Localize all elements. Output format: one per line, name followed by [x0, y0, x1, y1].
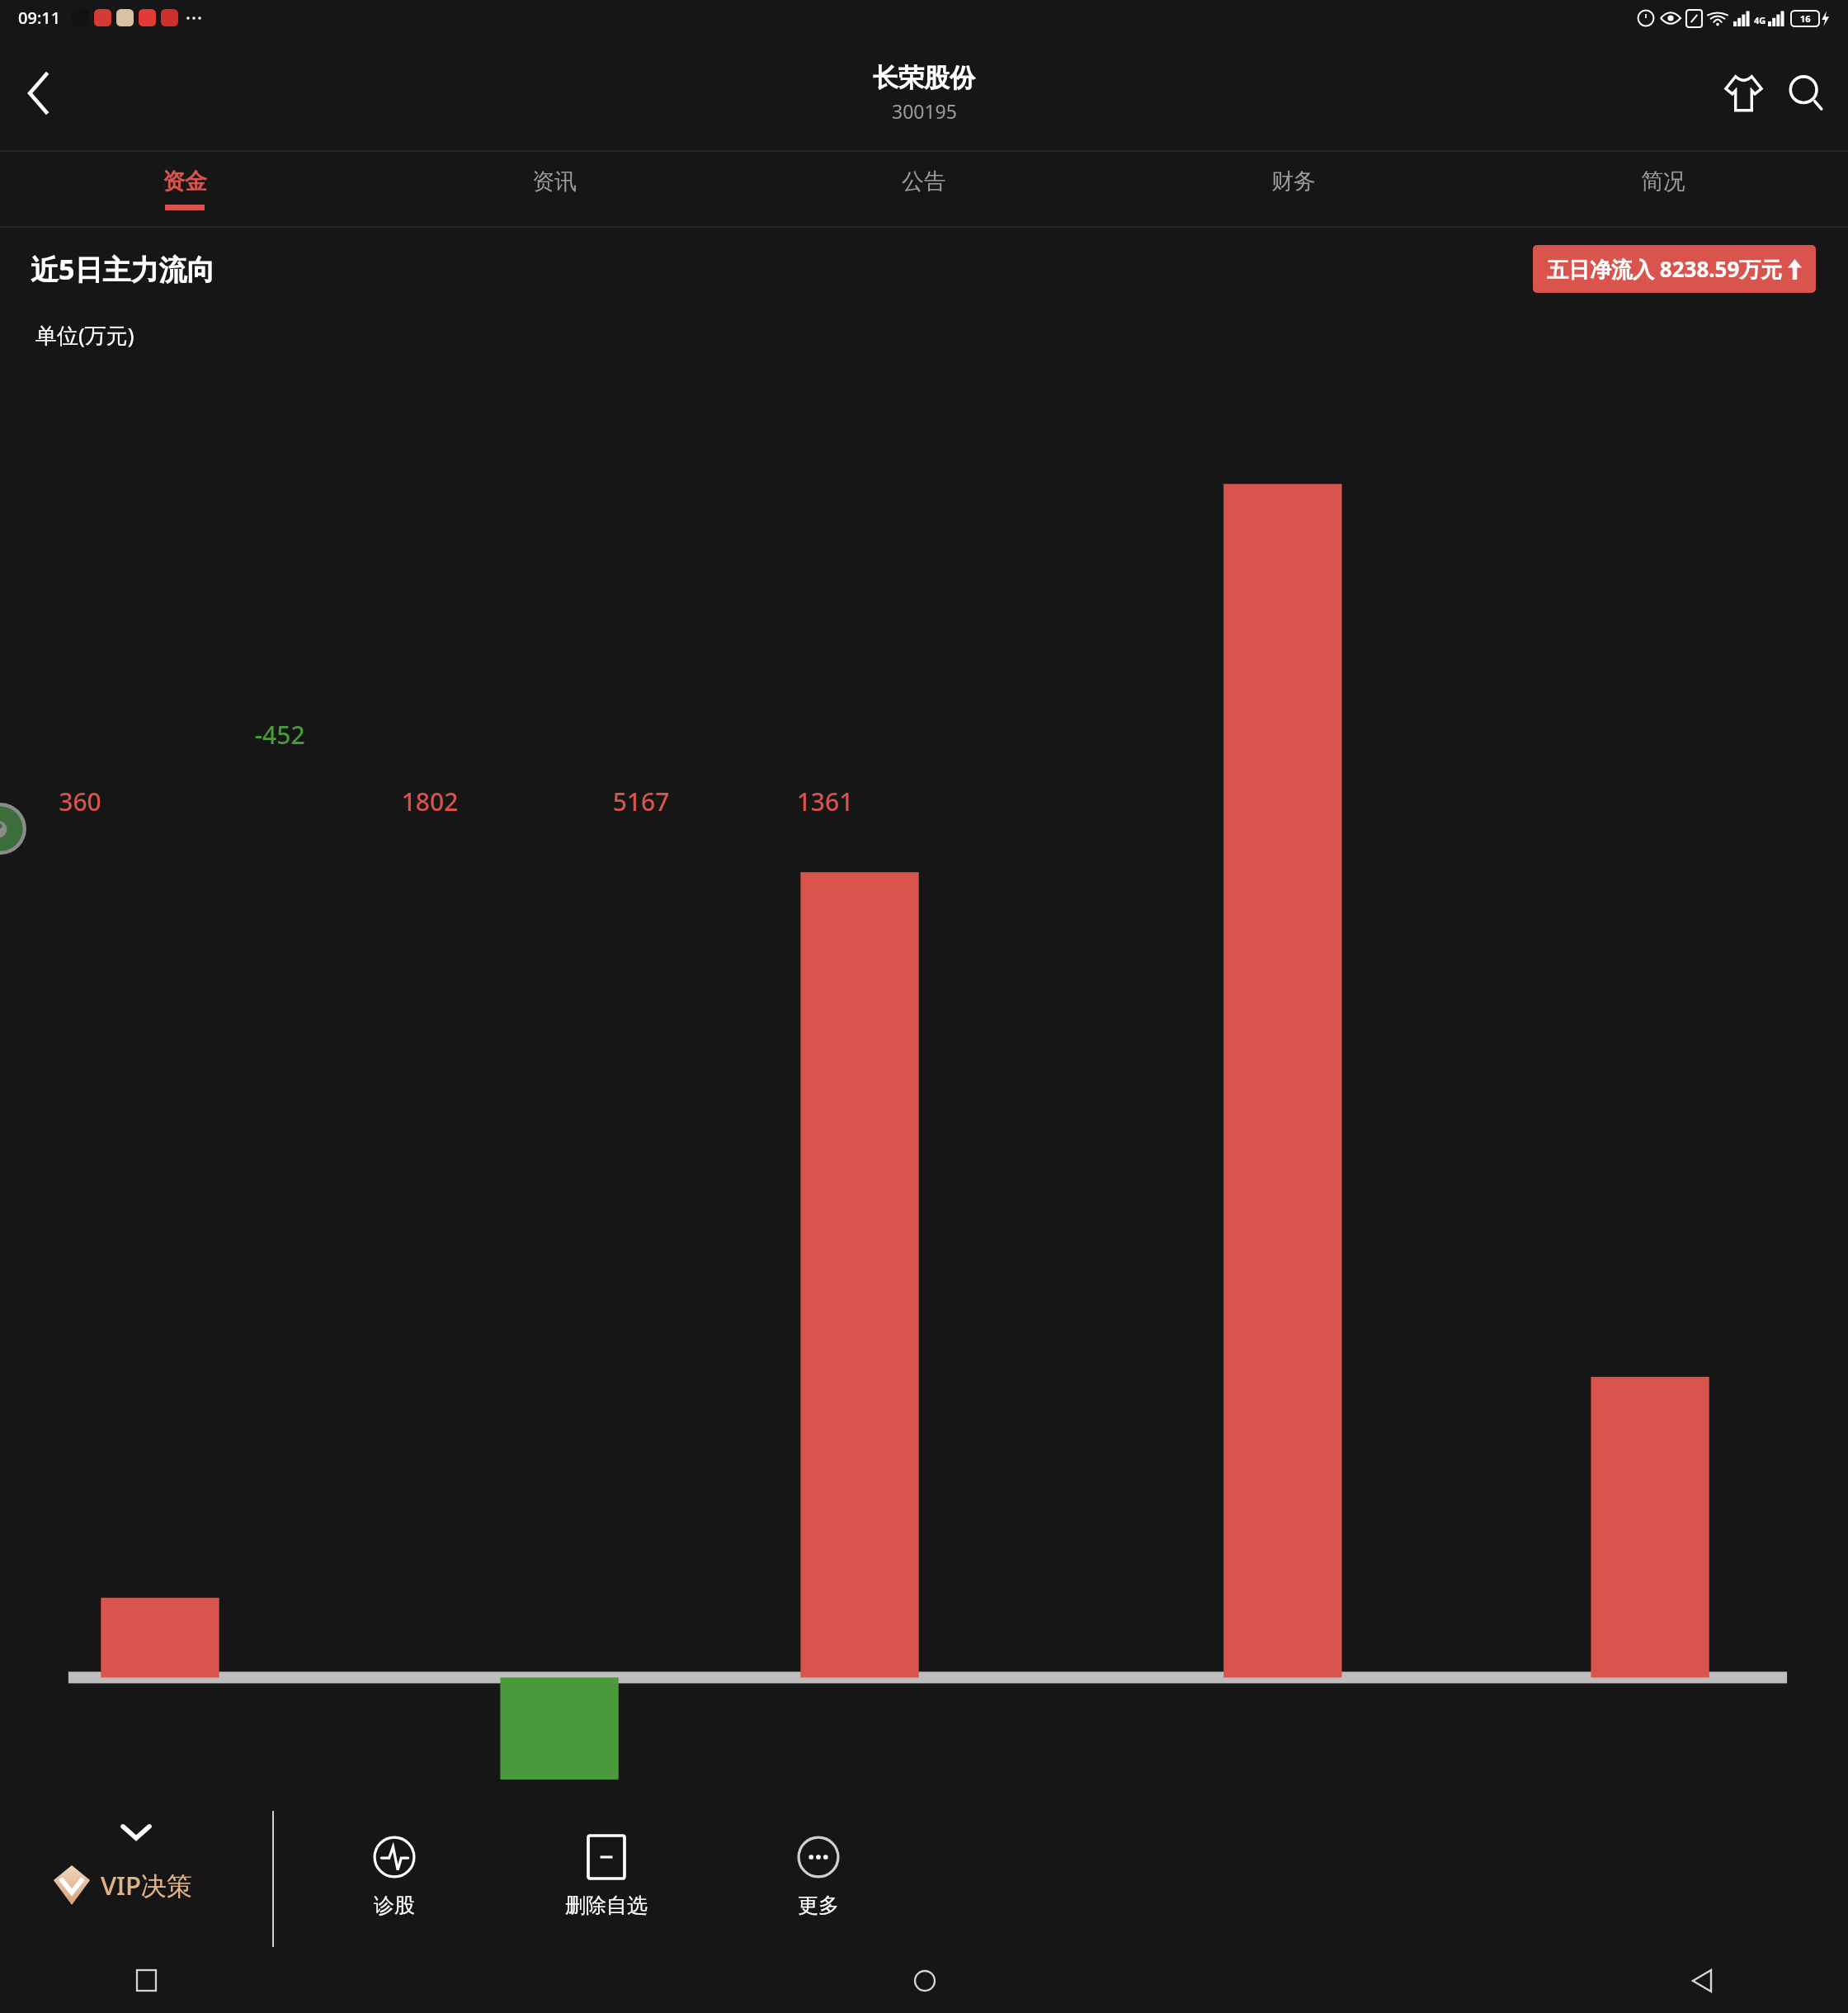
staticText: 财务 — [1271, 167, 1316, 196]
staticText: 资讯 — [532, 167, 577, 196]
button[interactable]: 五日净流入 8238.59万元 — [1533, 245, 1816, 293]
staticText: 单位(万元) — [35, 320, 134, 350]
staticText: 资金 — [163, 167, 207, 196]
staticText: 更多 — [798, 1893, 839, 1918]
staticText: 公告 — [902, 167, 946, 196]
staticText: 09:11 — [18, 7, 61, 29]
staticText: 4G — [1754, 14, 1766, 26]
staticText: 5167 — [596, 785, 686, 818]
button[interactable]: Home — [902, 1958, 947, 2003]
button[interactable]: Back — [12, 66, 66, 120]
button[interactable]: 资金 — [0, 152, 370, 226]
button[interactable]: VIP决策 — [53, 1864, 192, 1906]
staticText: 诊股 — [374, 1893, 415, 1918]
staticText: 300195 — [892, 98, 957, 124]
staticText: 长荣股份 — [873, 62, 975, 94]
button[interactable]: Search — [1782, 68, 1831, 118]
button[interactable]: 资讯 — [370, 152, 739, 226]
staticText: 1802 — [384, 785, 475, 818]
button[interactable]: 财务 — [1109, 152, 1478, 226]
staticText: -452 — [226, 718, 333, 752]
button[interactable]: 公告 — [739, 152, 1109, 226]
button[interactable]: Back — [1679, 1958, 1724, 2003]
staticText: 16 — [1800, 12, 1811, 25]
staticText: VIP决策 — [101, 1868, 192, 1902]
button[interactable]: Theme — [1718, 68, 1768, 118]
staticText: 1361 — [780, 785, 870, 818]
button[interactable]: Recents — [124, 1958, 169, 2003]
button[interactable]: 更多 — [712, 1836, 924, 1918]
staticText: 近5日主力流向 — [31, 250, 215, 288]
staticText: 360 — [35, 785, 125, 818]
staticText: 简况 — [1641, 167, 1685, 196]
staticText: 五日净流入 8238.59万元 — [1547, 254, 1783, 284]
button[interactable]: 删除自选 — [500, 1836, 712, 1918]
staticText: 删除自选 — [565, 1893, 648, 1918]
button[interactable]: 诊股 — [289, 1836, 500, 1918]
button[interactable]: Collapse — [115, 1817, 157, 1846]
button[interactable]: 简况 — [1478, 152, 1848, 226]
